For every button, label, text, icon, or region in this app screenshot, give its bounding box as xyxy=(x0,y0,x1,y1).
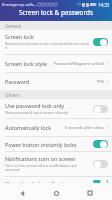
staticText: Use password lock only xyxy=(5,102,65,109)
staticText: Turn on the screen when notifications ar… xyxy=(5,163,90,173)
button[interactable]: Back xyxy=(10,186,34,200)
button[interactable]: Screen lock style xyxy=(0,55,112,72)
button[interactable]: Show detailed notifications xyxy=(0,177,112,186)
button[interactable]: Switch off xyxy=(93,105,108,113)
staticText: 14:33 xyxy=(98,2,110,8)
button[interactable]: Notifications turn on screen xyxy=(0,152,112,176)
staticText: PIN xyxy=(97,79,104,84)
staticText: Screen lock xyxy=(5,33,34,40)
staticText: Show detailed notifications xyxy=(5,180,74,183)
staticText: General xyxy=(5,23,22,29)
button[interactable]: Password xyxy=(0,73,112,90)
button[interactable]: Screen lock xyxy=(0,30,112,54)
button[interactable]: Switch on xyxy=(93,38,108,46)
button[interactable]: Switch on xyxy=(93,140,108,148)
staticText: 5 seconds after sleep xyxy=(65,125,104,130)
staticText: Show password input screen directly xyxy=(5,110,69,115)
staticText: Others xyxy=(5,92,20,98)
staticText: Power button instantly locks xyxy=(5,141,77,148)
staticText: Automatically lock xyxy=(5,124,52,131)
staticText: Emergency calls… xyxy=(2,2,37,8)
button[interactable]: Use password lock only xyxy=(0,99,112,118)
button[interactable]: Switch off xyxy=(93,160,108,168)
staticText: Notifications turn on screen xyxy=(5,155,76,162)
staticText: Password xyxy=(5,78,30,85)
button[interactable]: Recent apps xyxy=(78,186,102,200)
button[interactable]: Power button instantly locks xyxy=(0,137,112,151)
button[interactable]: Home xyxy=(44,186,68,200)
staticText: Require your phone to be unlocked before… xyxy=(5,41,90,51)
button[interactable]: Automatically lock xyxy=(0,119,112,136)
button[interactable]: Switch on xyxy=(93,180,108,183)
staticText: Screen lock & passwords xyxy=(19,8,93,17)
staticText: Screen lock style xyxy=(5,60,47,67)
staticText: Password/Magazine unlock xyxy=(54,61,104,66)
